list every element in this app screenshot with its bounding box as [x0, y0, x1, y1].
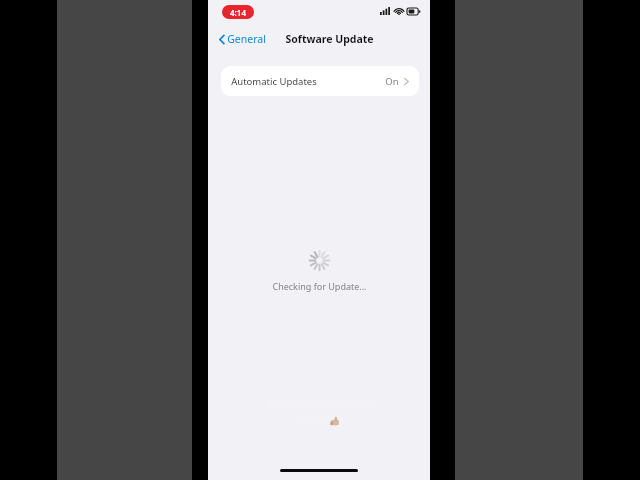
button[interactable]: Automatic Updates — [221, 66, 419, 96]
staticText: Software Update — [285, 32, 374, 46]
staticText: On — [385, 75, 399, 88]
staticText: General — [227, 32, 266, 46]
staticText: Automatic Updates — [231, 75, 317, 88]
staticText: 4:14 — [230, 7, 246, 18]
other: Loading — [309, 250, 330, 271]
button[interactable]: General — [217, 28, 268, 50]
staticText: Checking for Update... — [272, 280, 367, 292]
